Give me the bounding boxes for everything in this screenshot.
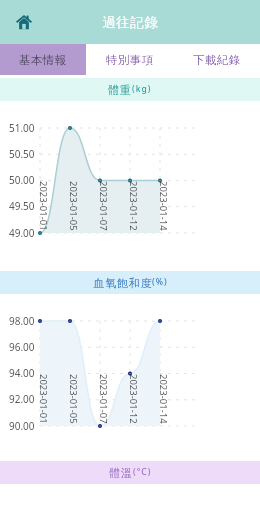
staticText: 50.50 [9,147,35,161]
button[interactable]: 特別事項 [86,44,173,75]
staticText: 體重 [108,83,132,97]
staticText: 2023-01-07 [98,374,110,424]
staticText: 下載紀錄 [193,53,241,67]
button[interactable]: Home [10,8,38,36]
staticText: 92.00 [9,392,35,406]
staticText: 2023-01-12 [128,374,140,424]
staticText: 2023-01-05 [68,181,80,231]
staticText: 2023-01-14 [158,374,170,424]
staticText: 94.00 [9,366,35,380]
staticText: 過往記錄 [102,14,158,31]
staticText: 基本情報 [19,53,67,67]
staticText: 特別事項 [106,53,154,67]
button[interactable]: 基本情報 [0,44,86,75]
staticText: (°C) [133,466,152,478]
staticText: 98.00 [9,314,35,328]
staticText: 體溫 [109,466,133,480]
staticText: 2023-01-05 [68,374,80,424]
staticText: (%) [152,276,168,288]
staticText: 2023-01-14 [158,181,170,231]
staticText: 49.50 [9,199,35,213]
staticText: 2023-01-07 [98,181,110,231]
staticText: 2023-01-01 [38,374,50,424]
staticText: 49.00 [9,226,35,240]
staticText: 2023-01-01 [38,181,50,231]
staticText: 90.00 [9,419,35,433]
staticText: 96.00 [9,340,35,354]
staticText: 血氧飽和度 [93,276,152,290]
staticText: (kg) [132,83,152,95]
staticText: 2023-01-12 [128,181,140,231]
button[interactable]: 下載紀錄 [173,44,260,75]
staticText: 50.00 [9,173,35,187]
staticText: 51.00 [9,121,35,135]
